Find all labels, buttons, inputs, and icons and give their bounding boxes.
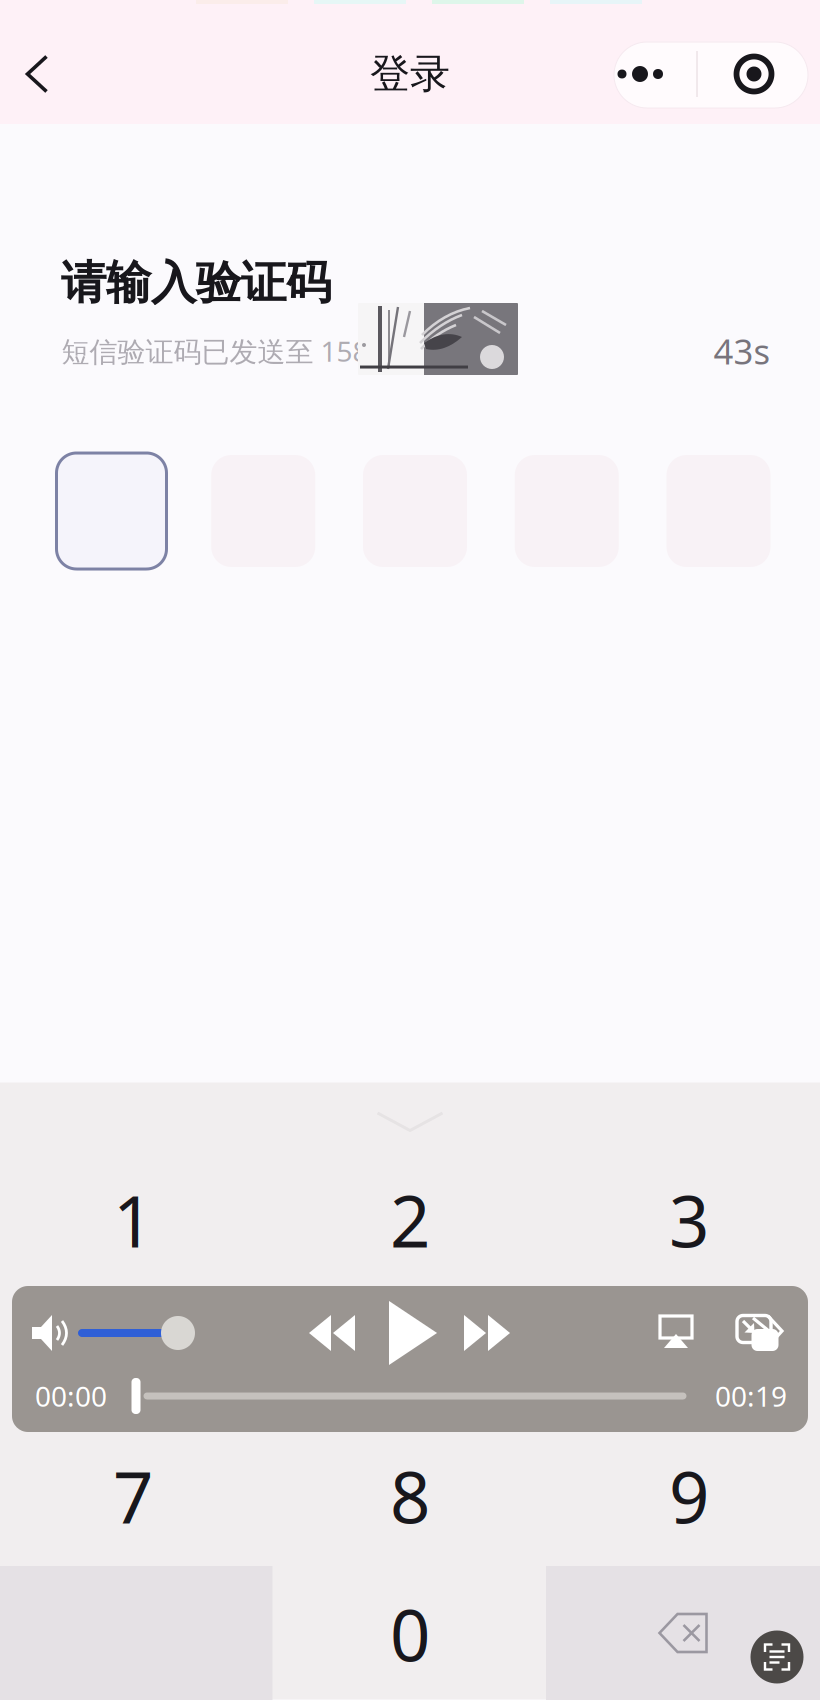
button[interactable]: Rewind (299, 1305, 365, 1361)
staticText: 43s (713, 328, 770, 374)
staticText: 6 (669, 1311, 709, 1405)
button[interactable]: 4 (0, 1289, 269, 1426)
staticText: 8 (390, 1449, 430, 1543)
staticText: 登录 (370, 49, 450, 98)
button[interactable]: Scan text (750, 1630, 803, 1683)
button[interactable]: More (598, 43, 681, 105)
staticText: 2 (390, 1173, 430, 1267)
button[interactable]: Close (713, 43, 795, 105)
staticText: 1 (113, 1173, 153, 1267)
button[interactable]: Picture in picture (730, 1304, 790, 1360)
button[interactable]: Play (380, 1298, 446, 1368)
staticText: 00:00 (35, 1377, 107, 1415)
staticText: 5 (390, 1311, 430, 1405)
staticText: 7 (113, 1449, 153, 1543)
staticText: 00:19 (715, 1377, 787, 1415)
staticText: 短信验证码已发送至 158 (61, 332, 368, 370)
button[interactable]: 3 (552, 1151, 820, 1288)
staticText: 3 (669, 1173, 709, 1267)
button[interactable]: AirPlay (646, 1303, 706, 1361)
button[interactable]: Fast forward (454, 1305, 520, 1361)
button[interactable]: 7 (0, 1427, 269, 1564)
staticText: 0 (390, 1587, 430, 1681)
button[interactable]: Mute (24, 1309, 80, 1357)
staticText: 请输入验证码 (61, 255, 331, 311)
button[interactable]: 5 (273, 1289, 546, 1426)
button[interactable]: 9 (552, 1427, 820, 1564)
button[interactable]: 1 (0, 1151, 269, 1288)
button[interactable]: Back (0, 33, 74, 115)
staticText: 9 (669, 1449, 709, 1543)
button[interactable]: 2 (273, 1151, 546, 1288)
button[interactable]: 6 (552, 1289, 820, 1426)
button[interactable]: 0 (273, 1565, 546, 1700)
staticText: 4 (113, 1311, 153, 1405)
button[interactable]: 8 (273, 1427, 546, 1564)
button[interactable]: Delete (546, 1566, 820, 1700)
